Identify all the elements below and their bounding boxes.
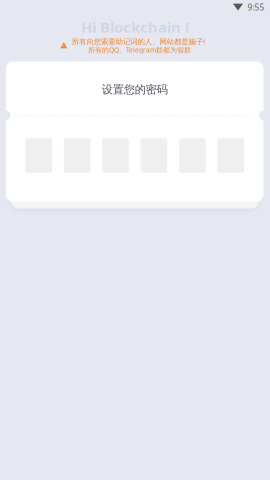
staticText: 设置您的密码: [102, 82, 168, 96]
staticText: Hi Blockchain !: [81, 17, 189, 37]
staticText: 所有的QQ、Telegram群都为假群: [88, 45, 191, 54]
staticText: 9:55: [247, 2, 264, 13]
staticText: 所有向您索要助记词的人、网站都是骗子!: [72, 36, 205, 47]
